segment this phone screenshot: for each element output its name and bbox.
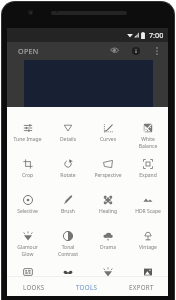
staticText: Glamour Glow <box>7 244 48 257</box>
button[interactable]: Rotate <box>48 143 88 179</box>
button[interactable] <box>88 251 128 276</box>
button[interactable]: Expand <box>128 143 168 179</box>
staticText: Tune Image <box>7 136 48 143</box>
staticText: Brush <box>48 208 88 215</box>
staticText: Drama <box>88 244 128 251</box>
staticText: Rotate <box>48 172 88 179</box>
staticText: Tonal Contrast <box>48 244 88 257</box>
staticText: Vintage <box>128 244 168 251</box>
button[interactable]: Drama <box>88 215 128 251</box>
button[interactable]: More options <box>150 44 164 58</box>
button[interactable]: Tonal Contrast <box>48 215 88 251</box>
button[interactable]: Compare <box>106 43 122 59</box>
staticText: EXPORT <box>129 283 154 291</box>
button[interactable] <box>128 251 168 276</box>
staticText: OPEN <box>18 46 39 56</box>
staticText <box>88 280 128 287</box>
button[interactable]: Brush <box>48 179 88 215</box>
button[interactable]: Glamour Glow <box>7 215 48 251</box>
button[interactable]: Info <box>128 43 144 59</box>
button[interactable]: EXPORT <box>114 277 168 296</box>
staticText: LOOKS <box>23 283 45 291</box>
button[interactable]: HDR Scape <box>128 179 168 215</box>
staticText: Perspective <box>88 172 128 179</box>
staticText: TOOLS <box>76 283 98 291</box>
staticText <box>48 280 88 287</box>
staticText <box>128 280 168 287</box>
staticText: Healing <box>88 208 128 215</box>
button[interactable]: Perspective <box>88 143 128 179</box>
button[interactable]: White Balance <box>128 107 168 143</box>
staticText <box>7 280 48 287</box>
button[interactable] <box>48 251 88 276</box>
staticText: 7:00 <box>149 30 164 40</box>
staticText: Curves <box>88 136 128 143</box>
staticText: White Balance <box>128 136 168 149</box>
button[interactable]: LOOKS <box>7 277 60 296</box>
button[interactable]: Details <box>48 107 88 143</box>
button[interactable]: TOOLS <box>60 277 114 296</box>
button[interactable]: Crop <box>7 143 48 179</box>
button[interactable]: Vintage <box>128 215 168 251</box>
button[interactable]: Curves <box>88 107 128 143</box>
button[interactable] <box>7 251 48 276</box>
staticText: Crop <box>7 172 48 179</box>
staticText: Details <box>48 136 88 143</box>
staticText: HDR Scape <box>128 208 168 215</box>
button[interactable]: Tune Image <box>7 107 48 143</box>
button[interactable]: Selective <box>7 179 48 215</box>
button[interactable]: Healing <box>88 179 128 215</box>
staticText: Expand <box>128 172 168 179</box>
staticText: Selective <box>7 208 48 215</box>
